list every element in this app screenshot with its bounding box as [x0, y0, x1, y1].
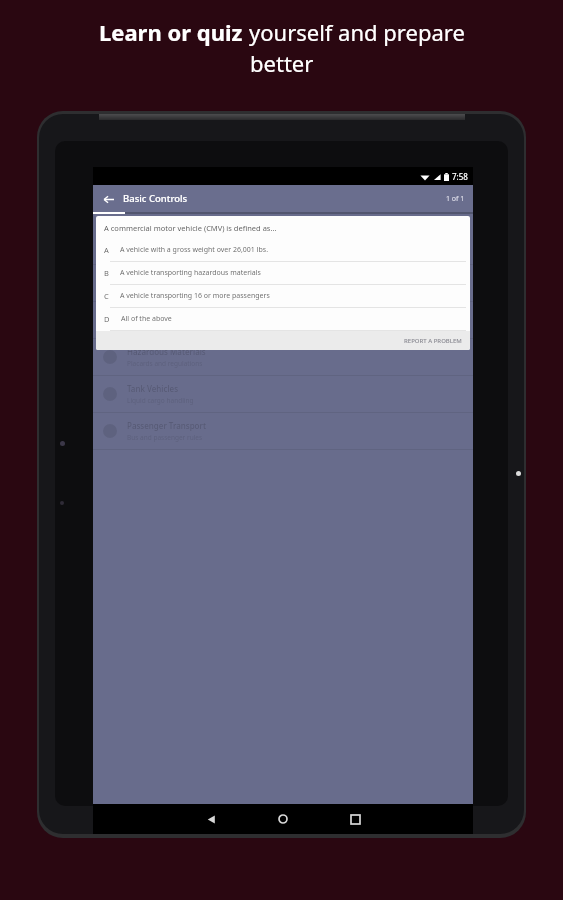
button[interactable]: Hazardous Materials	[93, 339, 473, 375]
button[interactable]: Back	[98, 189, 118, 209]
staticText: Passenger Transport	[127, 420, 206, 431]
staticText: 1 of 1	[446, 194, 465, 204]
button[interactable]: B	[96, 262, 470, 284]
staticText: Doubles, triples and trailers	[127, 322, 212, 331]
staticText: Liquid cargo handling	[127, 396, 194, 405]
staticText: Questions about air brake systems	[127, 285, 233, 294]
staticText: A vehicle transporting hazardous materia…	[120, 268, 261, 278]
staticText: Placards and regulations	[127, 359, 203, 368]
staticText: Learn or quiz	[99, 17, 249, 47]
button[interactable]: C	[96, 285, 470, 307]
staticText: A vehicle transporting 16 or more passen…	[120, 291, 270, 301]
button[interactable]: A	[96, 239, 470, 261]
staticText: B	[104, 268, 109, 278]
staticText: C	[104, 291, 109, 301]
staticText: Bus and passenger rules	[127, 433, 203, 442]
staticText: A	[104, 245, 109, 255]
staticText: Tank Vehicles	[127, 383, 179, 394]
button[interactable]: Combination Vehicles	[93, 302, 473, 338]
staticText: Air Brakes	[127, 272, 166, 283]
button[interactable]: Air Brakes	[93, 265, 473, 301]
staticText: REPORT A PROBLEM	[404, 337, 462, 345]
staticText: Hazardous Materials	[127, 346, 206, 357]
button[interactable]: REPORT A PROBLEM	[396, 333, 470, 349]
button[interactable]: Home	[266, 804, 300, 834]
staticText: Combination Vehicles	[127, 309, 210, 320]
staticText: A commercial motor vehicle (CMV) is defi…	[104, 223, 277, 233]
button[interactable]: D	[96, 308, 470, 330]
staticText: All of the above	[121, 314, 172, 324]
button[interactable]: Question counter	[446, 194, 465, 204]
staticText: D	[104, 314, 110, 324]
staticText: Questions covering basic road rules	[127, 248, 236, 257]
staticText: Basic Controls	[123, 192, 188, 205]
button[interactable]: General Knowledge	[93, 228, 473, 264]
button[interactable]: Recent apps	[338, 804, 372, 834]
button[interactable]: Back	[194, 804, 228, 834]
staticText: yourself and prepare	[249, 17, 465, 47]
staticText: A vehicle with a gross weight over 26,00…	[120, 245, 269, 255]
staticText: 7:58	[452, 171, 468, 182]
staticText: better	[250, 48, 314, 78]
